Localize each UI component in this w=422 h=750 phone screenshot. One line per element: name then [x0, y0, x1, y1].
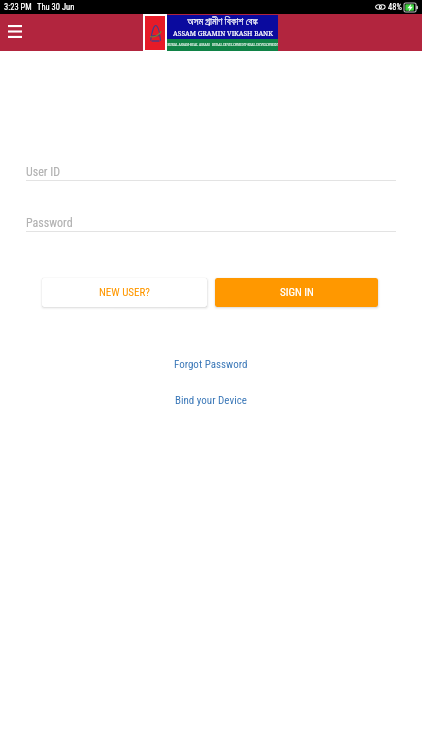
- button[interactable]: Open navigation menu: [0, 14, 30, 51]
- staticText: Thu 30 Jun: [37, 2, 75, 12]
- staticText: Bind your Device: [175, 394, 247, 407]
- staticText: SIGN IN: [280, 286, 314, 299]
- button[interactable]: NEW USER?: [42, 278, 207, 307]
- staticText: অসম গ্ৰামীণ বিকাশ বেঙ্ক: [187, 16, 258, 28]
- staticText: NEW USER?: [99, 286, 151, 299]
- staticText: 48%: [388, 2, 402, 12]
- staticText: Password: [26, 216, 73, 230]
- button[interactable]: SIGN IN: [215, 278, 378, 307]
- staticText: Forgot Password: [174, 358, 248, 371]
- staticText: User ID: [26, 165, 61, 179]
- staticText: 3:23 PM: [4, 2, 32, 12]
- button[interactable]: Forgot Password: [166, 354, 256, 375]
- button[interactable]: Password: [26, 216, 396, 237]
- button[interactable]: Bind your Device: [167, 390, 255, 411]
- staticText: RURAL ASSAM-REAL ASSAM RURAL DEVELOPMENT…: [167, 43, 278, 47]
- staticText: ASSAM GRAMIN VIKASH BANK: [173, 29, 273, 38]
- button[interactable]: User ID: [26, 165, 396, 186]
